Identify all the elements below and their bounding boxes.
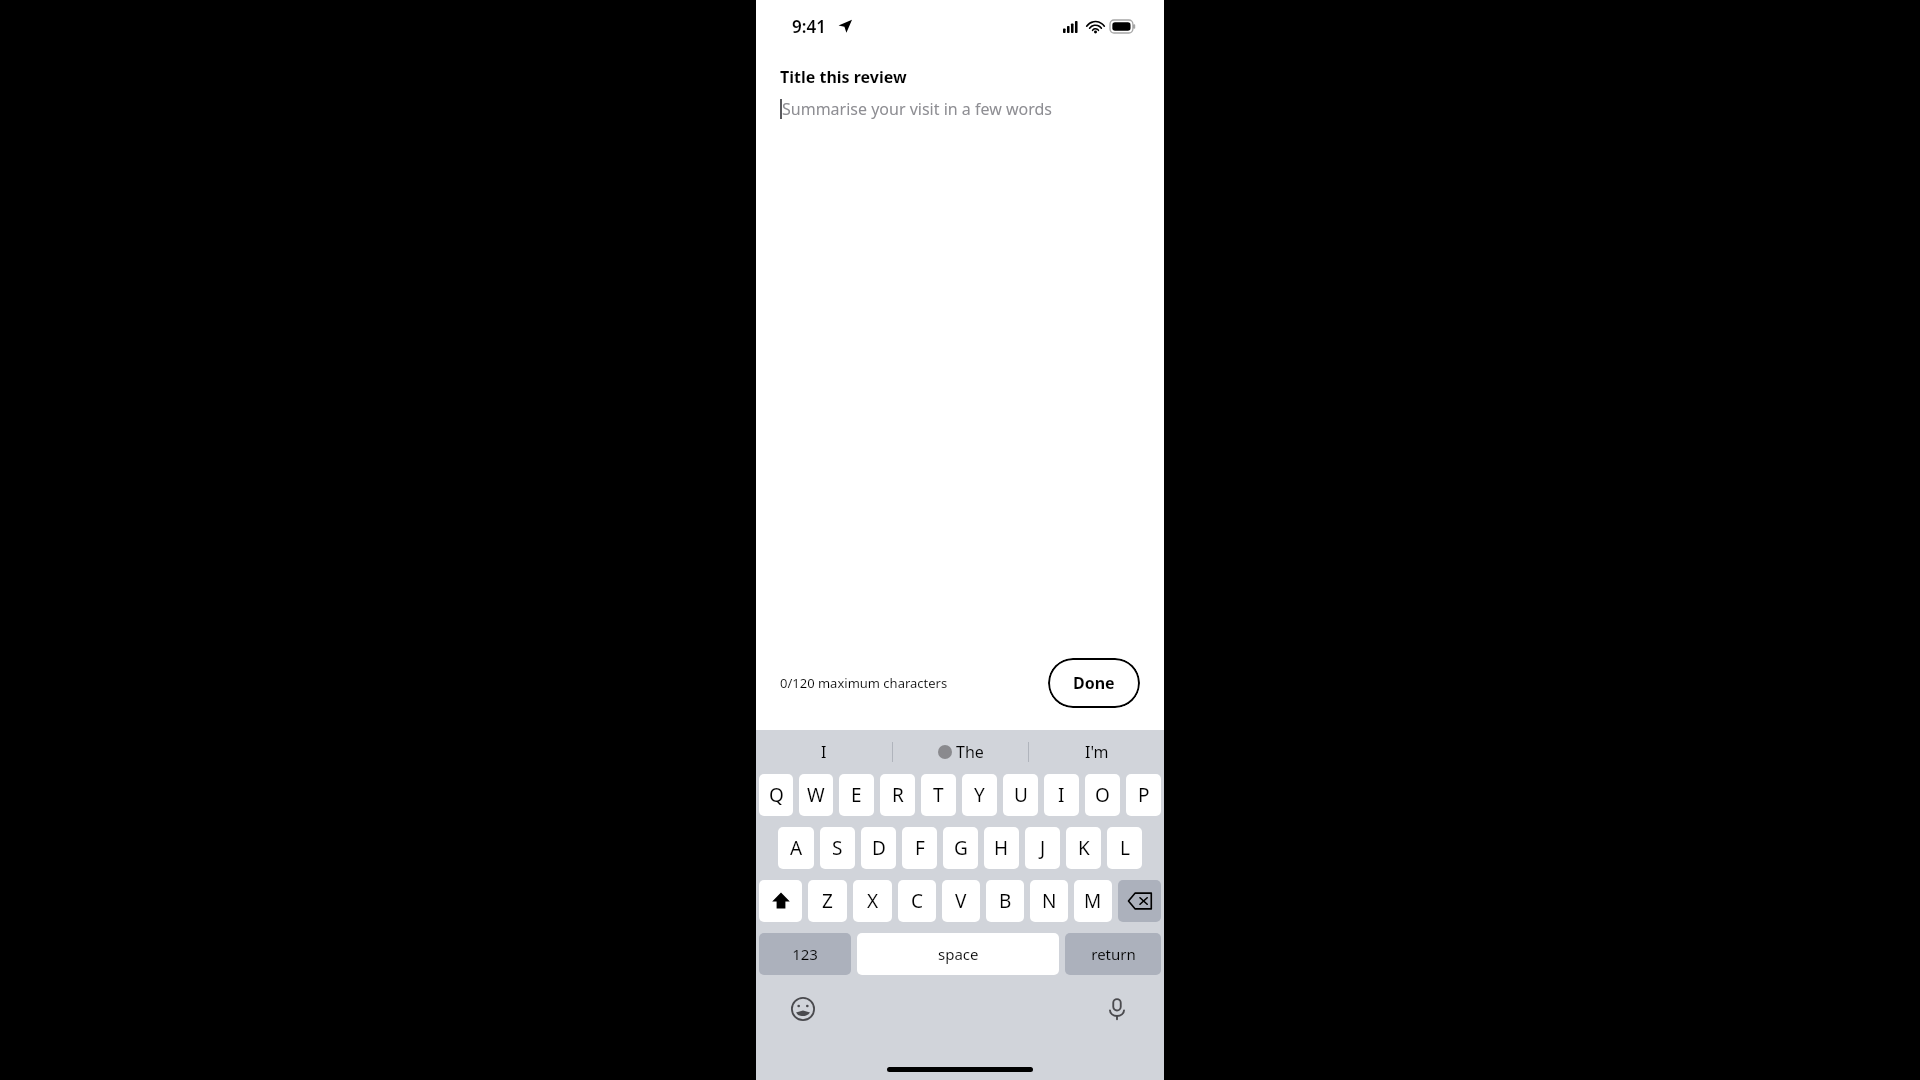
button[interactable]: 123 <box>759 933 851 975</box>
button[interactable]: Shift <box>759 880 802 922</box>
staticText: Title this review <box>780 66 907 88</box>
button[interactable]: S <box>820 827 855 869</box>
staticText: 0/120 maximum characters <box>780 674 948 692</box>
staticText: Y <box>974 782 985 808</box>
staticText: I <box>1058 782 1065 808</box>
staticText: T <box>933 782 944 808</box>
staticText: return <box>1091 944 1136 964</box>
button[interactable]: K <box>1066 827 1101 869</box>
staticText: space <box>938 944 979 964</box>
staticText: I <box>821 741 827 763</box>
staticText: P <box>1138 782 1150 808</box>
button[interactable]: Backspace <box>1118 880 1161 922</box>
staticText: O <box>1095 782 1110 808</box>
button[interactable]: I'm <box>1029 730 1164 774</box>
button[interactable]: B <box>986 880 1024 922</box>
staticText: J <box>1040 835 1046 861</box>
staticText: I'm <box>1085 741 1109 763</box>
button[interactable]: return <box>1065 933 1161 975</box>
button[interactable]: Emoji <box>786 992 820 1026</box>
button[interactable]: A <box>778 827 814 869</box>
button[interactable]: The <box>893 730 1028 774</box>
button[interactable]: space <box>857 933 1059 975</box>
button[interactable]: Summarise your visit in a few words <box>780 98 1140 120</box>
button[interactable]: G <box>943 827 978 869</box>
staticText: A <box>790 835 803 861</box>
button[interactable]: Dictate <box>1100 992 1134 1026</box>
button[interactable]: F <box>902 827 937 869</box>
staticText: K <box>1078 835 1090 861</box>
button[interactable]: E <box>839 774 874 816</box>
button[interactable]: D <box>861 827 896 869</box>
button[interactable]: P <box>1126 774 1161 816</box>
button[interactable]: U <box>1003 774 1038 816</box>
staticText: B <box>999 888 1012 914</box>
staticText: G <box>954 835 968 861</box>
button[interactable]: Z <box>808 880 847 922</box>
button[interactable]: V <box>942 880 980 922</box>
button[interactable]: T <box>921 774 956 816</box>
button[interactable]: L <box>1107 827 1142 869</box>
staticText: The <box>956 741 984 763</box>
staticText: 9:41 <box>792 15 826 38</box>
button[interactable]: H <box>984 827 1019 869</box>
staticText: L <box>1120 835 1130 861</box>
staticText: V <box>955 888 967 914</box>
staticText: Z <box>822 888 833 914</box>
button[interactable]: M <box>1074 880 1112 922</box>
staticText: S <box>832 835 843 861</box>
button[interactable]: Q <box>759 774 793 816</box>
staticText: N <box>1042 888 1057 914</box>
staticText: X <box>867 888 879 914</box>
button[interactable]: I <box>756 730 892 774</box>
button[interactable]: O <box>1085 774 1120 816</box>
staticText: H <box>994 835 1009 861</box>
staticText: U <box>1014 782 1028 808</box>
staticText: M <box>1084 888 1102 914</box>
staticText: 123 <box>792 944 818 964</box>
staticText: E <box>851 782 862 808</box>
button[interactable]: Y <box>962 774 997 816</box>
staticText: F <box>915 835 925 861</box>
staticText: Q <box>769 782 784 808</box>
button[interactable]: X <box>853 880 892 922</box>
button[interactable]: R <box>880 774 915 816</box>
button[interactable]: C <box>898 880 936 922</box>
staticText: Summarise your visit in a few words <box>782 98 1052 120</box>
button[interactable]: N <box>1030 880 1068 922</box>
button[interactable]: I <box>1044 774 1079 816</box>
staticText: R <box>892 782 904 808</box>
staticText: C <box>911 888 924 914</box>
button[interactable]: Done <box>1048 658 1140 708</box>
button[interactable]: W <box>799 774 833 816</box>
staticText: D <box>872 835 886 861</box>
staticText: Done <box>1073 672 1115 694</box>
staticText: W <box>807 782 825 808</box>
button[interactable]: J <box>1025 827 1060 869</box>
